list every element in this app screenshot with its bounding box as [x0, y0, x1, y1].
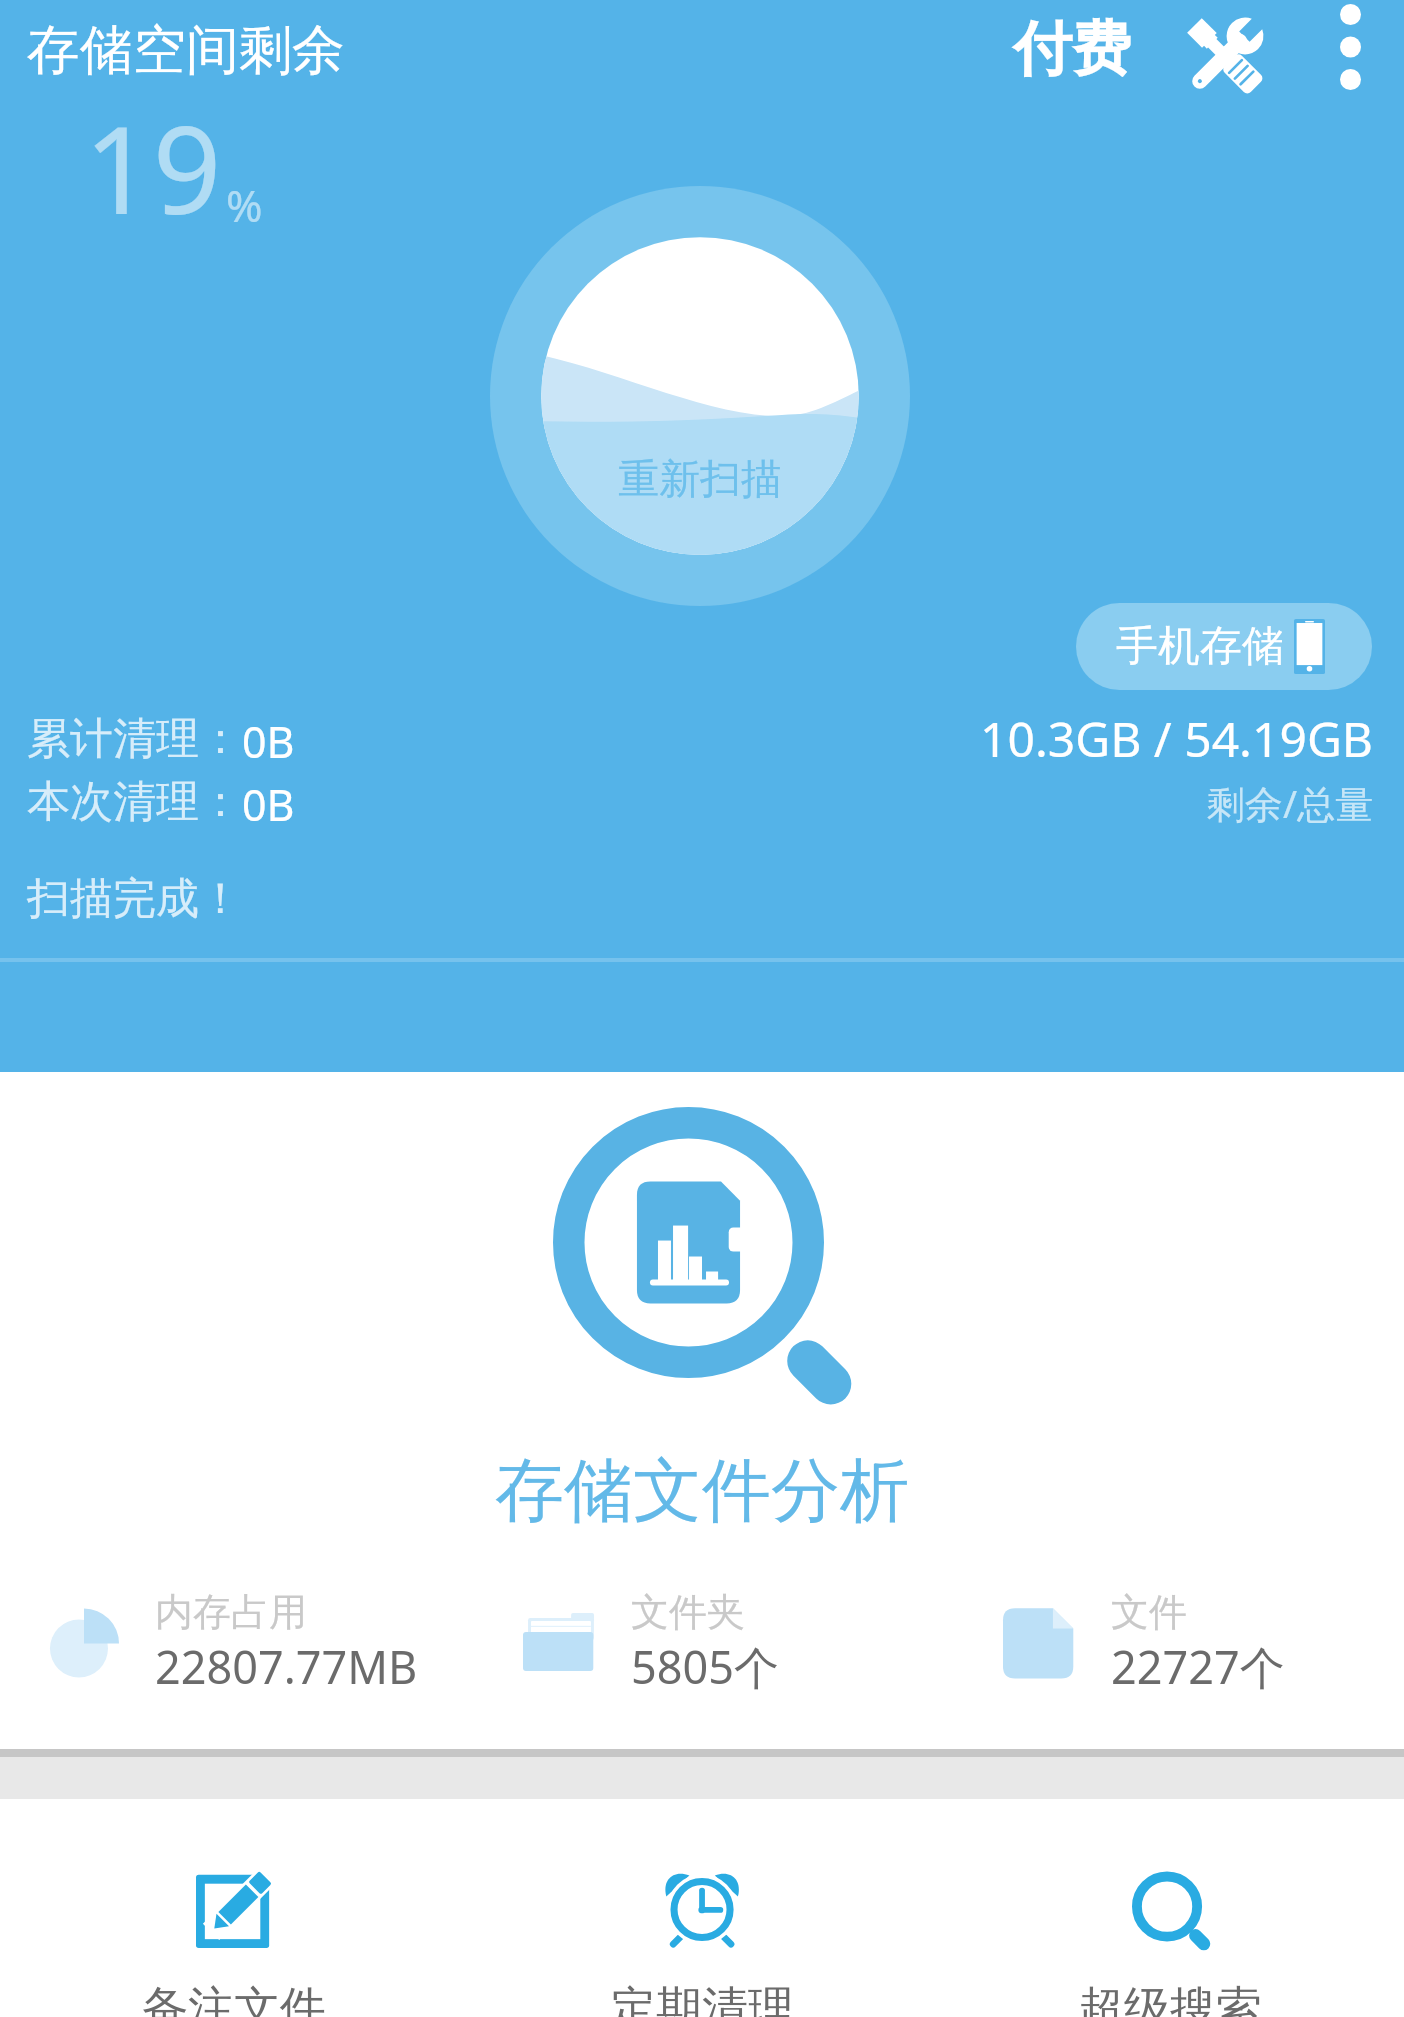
staticText: 22807.77MB	[155, 1636, 418, 1697]
staticText: 0B	[242, 712, 295, 771]
button[interactable]: 定期清理	[468, 1799, 936, 2017]
staticText: 存储空间剩余	[27, 17, 345, 84]
staticText: 内存占用	[155, 1588, 307, 1636]
staticText: 扫描完成！	[27, 872, 242, 926]
staticText: 手机存储	[1116, 620, 1284, 673]
button[interactable]: 付费	[996, 0, 1148, 100]
staticText: %	[226, 175, 263, 235]
staticText: 重新扫描	[618, 454, 782, 506]
staticText: 累计清理：	[27, 712, 242, 766]
staticText: 22727个	[1111, 1636, 1285, 1697]
staticText: 存储文件分析	[495, 1448, 909, 1535]
staticText: 0B	[242, 775, 295, 834]
staticText: 文件	[1111, 1588, 1187, 1636]
staticText: 19	[84, 86, 222, 249]
staticText: 5805个	[631, 1636, 779, 1697]
staticText: 定期清理	[610, 1980, 794, 2017]
button[interactable]: 超级搜索	[936, 1799, 1404, 2017]
staticText: 超级搜索	[1078, 1980, 1262, 2017]
staticText: 10.3GB / 54.19GB	[980, 706, 1374, 771]
button[interactable]: 内存占用	[47, 1588, 418, 1697]
button[interactable]: 备注文件	[0, 1799, 468, 2017]
staticText: 付费	[1013, 12, 1131, 86]
button[interactable]: 文件	[1003, 1588, 1285, 1697]
staticText: 本次清理：	[27, 775, 242, 829]
button[interactable]: 文件夹	[523, 1588, 779, 1697]
staticText: 文件夹	[631, 1588, 745, 1636]
button[interactable]: Tools	[1160, 0, 1290, 112]
staticText: 备注文件	[142, 1980, 326, 2017]
button[interactable]: 存储文件分析	[495, 1107, 909, 1535]
button[interactable]: 手机存储	[1076, 603, 1372, 690]
button[interactable]: More options	[1296, 0, 1404, 97]
staticText: 剩余/总量	[1207, 777, 1374, 829]
button[interactable]: 重新扫描	[490, 186, 910, 606]
